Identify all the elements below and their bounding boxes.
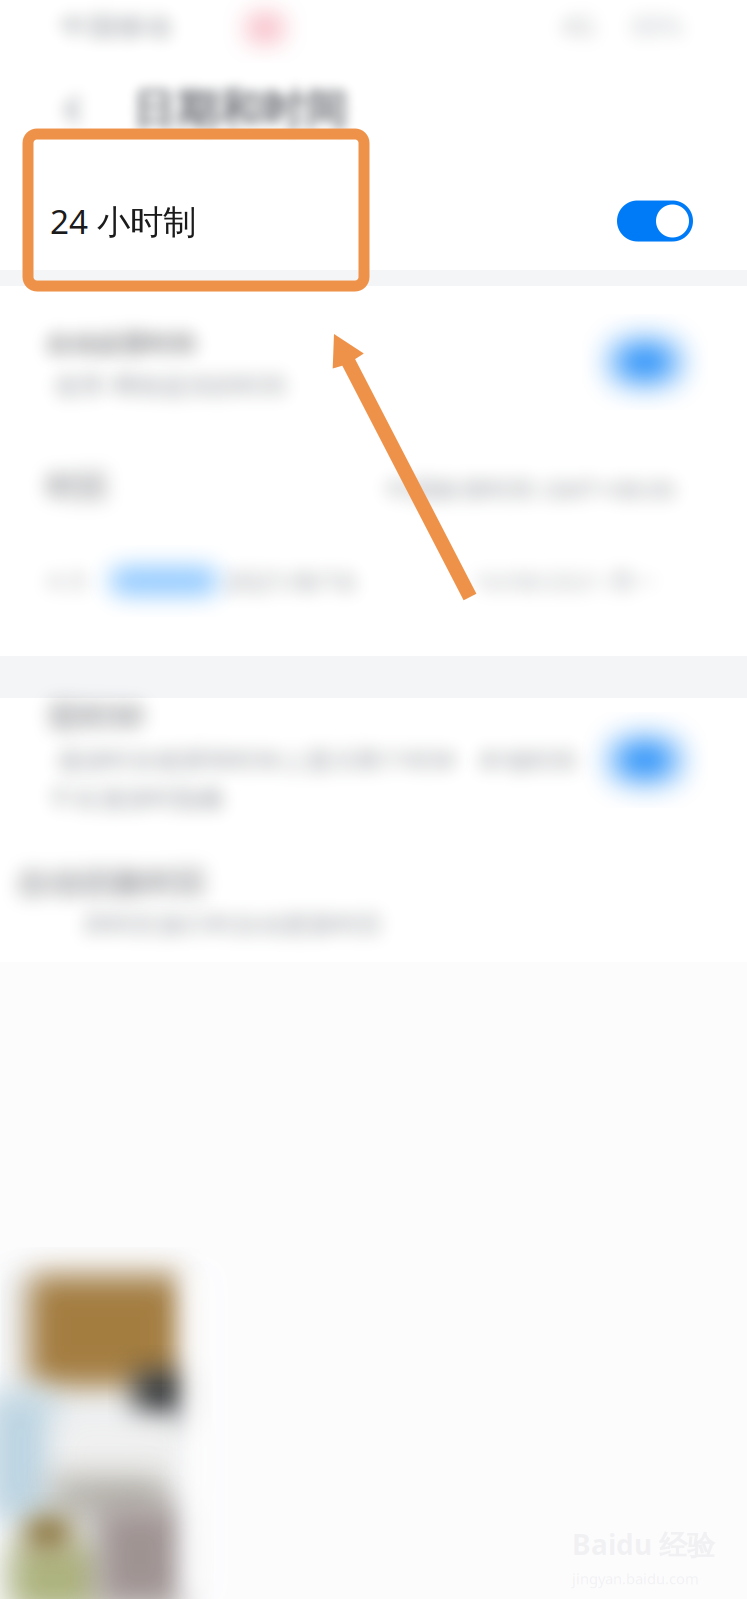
staticText: Baidu 经验 — [572, 1526, 715, 1563]
staticText: jingyan.baidu.com — [572, 1569, 699, 1588]
staticText: 24 小时制 — [50, 199, 196, 243]
button[interactable]: 24 小时制 — [0, 160, 747, 282]
